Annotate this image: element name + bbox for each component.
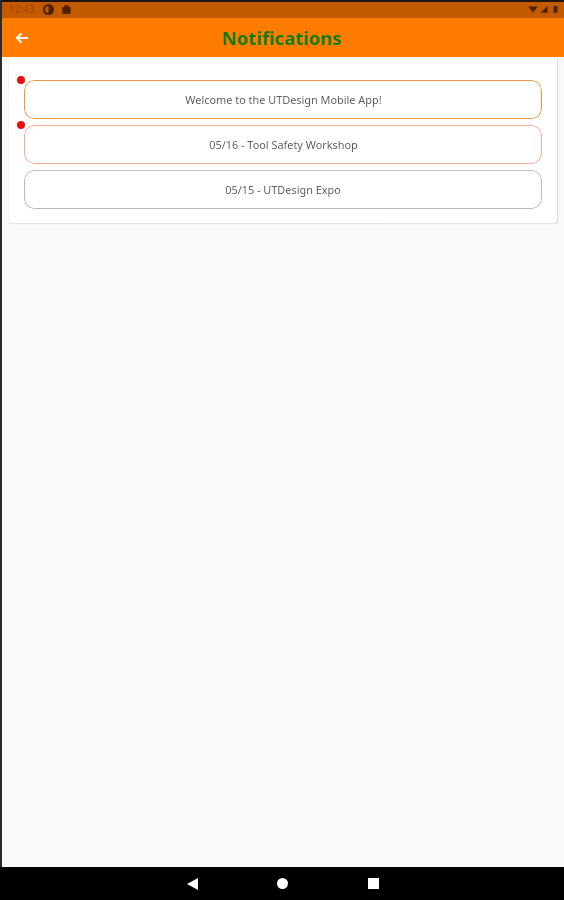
button[interactable]: Home	[237, 867, 328, 900]
staticText: Notifications	[222, 25, 342, 50]
button[interactable]: 05/15 - UTDesign Expo	[24, 170, 542, 209]
staticText: 12:43	[9, 2, 35, 16]
button[interactable]: 05/16 - Tool Safety Workshop	[24, 125, 542, 164]
button[interactable]: Back	[7, 23, 37, 53]
button[interactable]: Back	[147, 867, 237, 900]
button[interactable]: Welcome to the UTDesign Mobile App!	[24, 80, 542, 119]
staticText: 05/15 - UTDesign Expo	[225, 182, 341, 197]
button[interactable]: Recent apps	[328, 867, 419, 900]
staticText: Welcome to the UTDesign Mobile App!	[185, 92, 382, 107]
staticText: 05/16 - Tool Safety Workshop	[209, 137, 358, 152]
